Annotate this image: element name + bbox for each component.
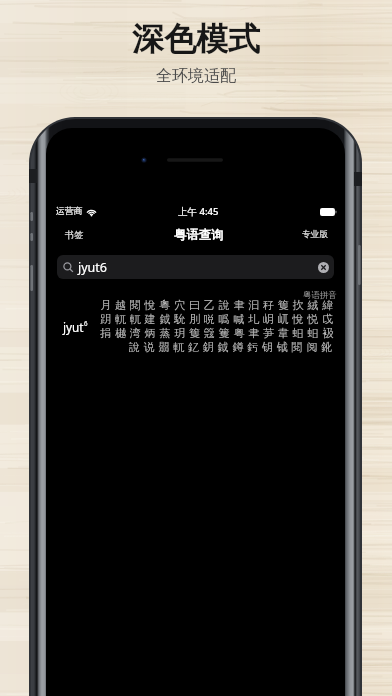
staticText: 粤语拼音: [303, 290, 337, 301]
staticText: jyut: [63, 319, 84, 335]
staticText: 捐樾湾炳蒸玥篗簆籆粤聿芛韋蚎蚎衱: [100, 326, 336, 340]
staticText: 粤语查询: [174, 227, 224, 242]
button[interactable]: Clear search: [318, 262, 329, 273]
staticText: 說说朤軏釔鈅鉞鐏釫钥钺閱阅鈋: [128, 340, 336, 354]
staticText: 全环境适配: [156, 66, 236, 86]
button[interactable]: 专业版: [298, 224, 332, 245]
button[interactable]: 书签: [61, 224, 88, 246]
staticText: 深色模式: [132, 19, 260, 59]
staticText: 跀軏軏建鉞馻刖哾噅喊圠岄屼悅悦戉: [100, 312, 336, 326]
staticText: 6: [84, 319, 88, 327]
staticText: 运营商: [56, 206, 83, 217]
staticText: jyut6: [78, 259, 107, 276]
staticText: 上午 4:45: [178, 205, 219, 218]
button[interactable]: jyut6: [57, 255, 334, 279]
staticText: 书签: [65, 229, 84, 241]
staticText: 专业版: [302, 229, 328, 240]
staticText: 月越閱悅粵穴曰乙說聿汩秄篗扻絨緯: [100, 298, 336, 312]
